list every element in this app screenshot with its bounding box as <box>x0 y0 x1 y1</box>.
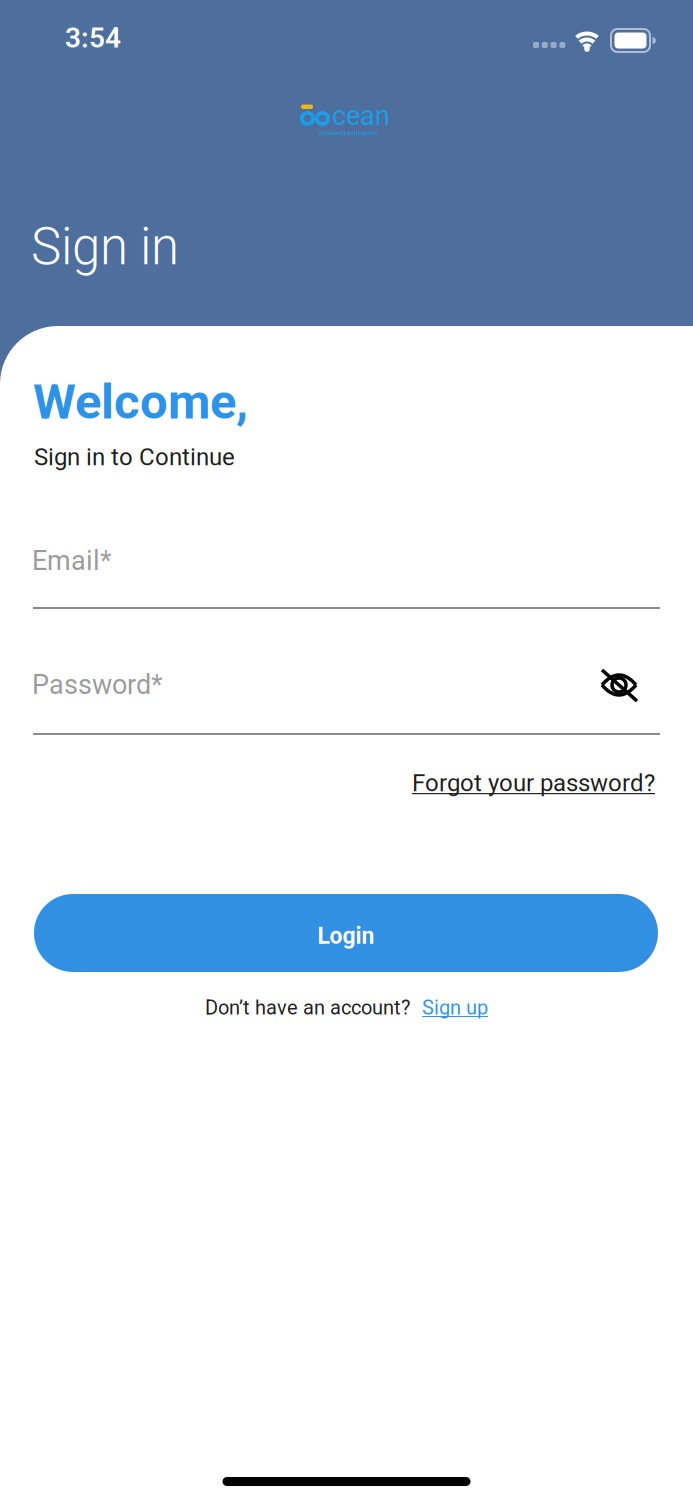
staticText: 3:54 <box>65 21 121 54</box>
staticText: Sign in to Continue <box>34 443 235 471</box>
button[interactable]: Email <box>32 530 660 609</box>
staticText: Don’t have an account? <box>205 996 410 1019</box>
staticText: Login <box>317 922 374 949</box>
staticText: Password* <box>32 669 163 701</box>
button[interactable]: Forgot your password? <box>412 769 655 797</box>
staticText: Welcome, <box>33 373 248 430</box>
button[interactable]: Login <box>34 894 658 972</box>
button[interactable]: Show password <box>597 663 641 707</box>
button[interactable]: Password <box>32 654 660 735</box>
staticText: AOcean Global Logistics <box>319 130 378 136</box>
staticText: Email* <box>32 545 112 577</box>
staticText: Sign in <box>31 217 179 277</box>
staticText: cean <box>332 100 390 132</box>
button[interactable]: Sign up <box>422 996 488 1019</box>
staticText: Sign up <box>422 996 488 1019</box>
staticText: Forgot your password? <box>412 769 655 797</box>
